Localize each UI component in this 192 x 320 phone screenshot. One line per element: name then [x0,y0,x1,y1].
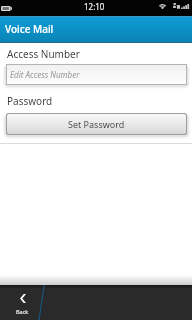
staticText: Access Number [7,47,80,61]
staticText: Voice Mail [5,22,54,36]
staticText: Password [7,94,53,108]
button[interactable]: Set Password [6,113,187,135]
button[interactable]: Edit Access Number [6,64,187,85]
button[interactable]: Back [12,285,34,320]
staticText: Set Password [68,118,125,130]
staticText: 12:10 [84,1,105,12]
staticText: Back [16,308,29,315]
staticText: Edit Access Number [10,69,80,80]
